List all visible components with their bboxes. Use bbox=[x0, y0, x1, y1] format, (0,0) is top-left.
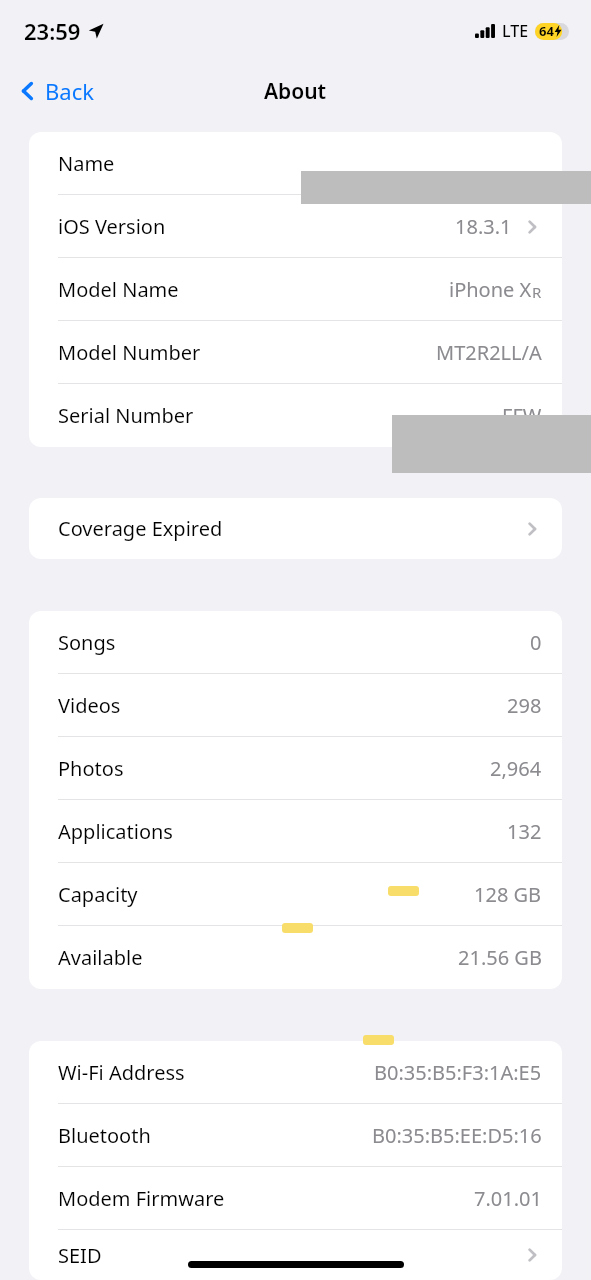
staticText: iPhone X bbox=[449, 276, 532, 303]
staticText: Bluetooth bbox=[58, 1122, 151, 1149]
staticText: Videos bbox=[58, 692, 121, 719]
button[interactable]: Songs bbox=[29, 611, 562, 674]
staticText: Wi-Fi Address bbox=[58, 1059, 185, 1086]
other: Location active bbox=[88, 23, 104, 39]
staticText: 23:59 bbox=[24, 16, 81, 46]
staticText: 18.3.1 bbox=[455, 213, 512, 240]
staticText: 132 bbox=[507, 818, 542, 845]
staticText: 0 bbox=[530, 629, 542, 656]
staticText: 21.56 GB bbox=[458, 944, 542, 971]
staticText: 7.01.01 bbox=[474, 1185, 542, 1212]
staticText: 128 GB bbox=[474, 881, 542, 908]
staticText: Modem Firmware bbox=[58, 1185, 225, 1212]
staticText: Photos bbox=[58, 755, 124, 782]
button[interactable]: Coverage Expired bbox=[29, 498, 562, 559]
button[interactable]: Name bbox=[29, 132, 562, 195]
staticText: SEID bbox=[58, 1242, 102, 1269]
staticText: Songs bbox=[58, 629, 116, 656]
button[interactable]: Model Number bbox=[29, 321, 562, 384]
button[interactable]: Bluetooth bbox=[29, 1104, 562, 1167]
staticText: Name bbox=[58, 150, 115, 177]
button[interactable]: Serial Number bbox=[29, 384, 562, 447]
staticText: 2,964 bbox=[490, 755, 542, 782]
staticText: Serial Number bbox=[58, 402, 194, 429]
staticText: LTE bbox=[502, 20, 529, 42]
staticText: Applications bbox=[58, 818, 173, 845]
other: Cellular signal bbox=[475, 24, 496, 38]
button[interactable]: Wi-Fi Address bbox=[29, 1041, 562, 1104]
button[interactable]: Modem Firmware bbox=[29, 1167, 562, 1230]
button[interactable]: Applications bbox=[29, 800, 562, 863]
staticText: Capacity bbox=[58, 881, 138, 908]
button[interactable]: Photos bbox=[29, 737, 562, 800]
staticText: Back bbox=[45, 76, 94, 106]
staticText: About bbox=[264, 77, 327, 106]
button[interactable]: Videos bbox=[29, 674, 562, 737]
staticText: Coverage Expired bbox=[58, 515, 223, 542]
button[interactable]: Capacity bbox=[29, 863, 562, 926]
button[interactable]: SEID bbox=[29, 1230, 562, 1280]
staticText: B0:35:B5:F3:1A:E5 bbox=[374, 1059, 542, 1086]
staticText: 64 bbox=[539, 22, 554, 40]
button[interactable]: iOS Version bbox=[29, 195, 562, 258]
staticText: Model Name bbox=[58, 276, 179, 303]
button[interactable]: Available bbox=[29, 926, 562, 989]
staticText: iOS Version bbox=[58, 213, 166, 240]
button[interactable]: Back bbox=[8, 71, 102, 111]
staticText: MT2R2LL/A bbox=[436, 339, 542, 366]
staticText: Available bbox=[58, 944, 143, 971]
button[interactable]: Model Name bbox=[29, 258, 562, 321]
staticText: B0:35:B5:EE:D5:16 bbox=[372, 1122, 542, 1149]
staticText: FFW bbox=[502, 402, 542, 429]
staticText: 298 bbox=[507, 692, 542, 719]
staticText: R bbox=[532, 282, 542, 302]
staticText: Model Number bbox=[58, 339, 201, 366]
